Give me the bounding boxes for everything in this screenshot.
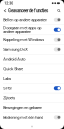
button[interactable]: Bewegingen en gebaren (0, 103, 64, 112)
button[interactable]: Back (2, 6, 8, 15)
button[interactable]: Bellen op andere apparaten (0, 15, 64, 24)
button[interactable]: Koppeling met Windows (0, 35, 64, 44)
staticText: Doorgaan met apps op (3, 26, 41, 30)
button[interactable]: Search (56, 6, 62, 15)
button[interactable]: Doorgaan met apps op (0, 25, 64, 35)
staticText: S Pen (3, 86, 12, 91)
button[interactable]: Zijtoets (0, 93, 64, 102)
staticText: Geavanceerde functies (8, 8, 48, 13)
staticText: Quick Share (3, 66, 23, 71)
button[interactable]: Labs (0, 74, 64, 83)
staticText: Samsung DeX (3, 47, 28, 52)
staticText: Bediening met één hand (3, 115, 43, 120)
staticText: 12:30 (4, 1, 13, 5)
staticText: Zijtoets (3, 96, 15, 100)
button[interactable]: Android Auto (0, 54, 64, 64)
staticText: Android Auto (3, 57, 25, 61)
button[interactable]: Bediening met één hand (0, 113, 64, 122)
button[interactable]: Quick Share (0, 64, 64, 73)
staticText: Bewegingen en gebaren (3, 105, 42, 110)
staticText: Koppeling met Windows (3, 37, 44, 42)
staticText: Bellen op andere apparaten (3, 17, 47, 22)
staticText: andere apparaten (3, 29, 31, 34)
button[interactable]: Samsung DeX (0, 45, 64, 54)
staticText: Labs (3, 76, 11, 81)
button[interactable]: S Pen (0, 83, 64, 93)
